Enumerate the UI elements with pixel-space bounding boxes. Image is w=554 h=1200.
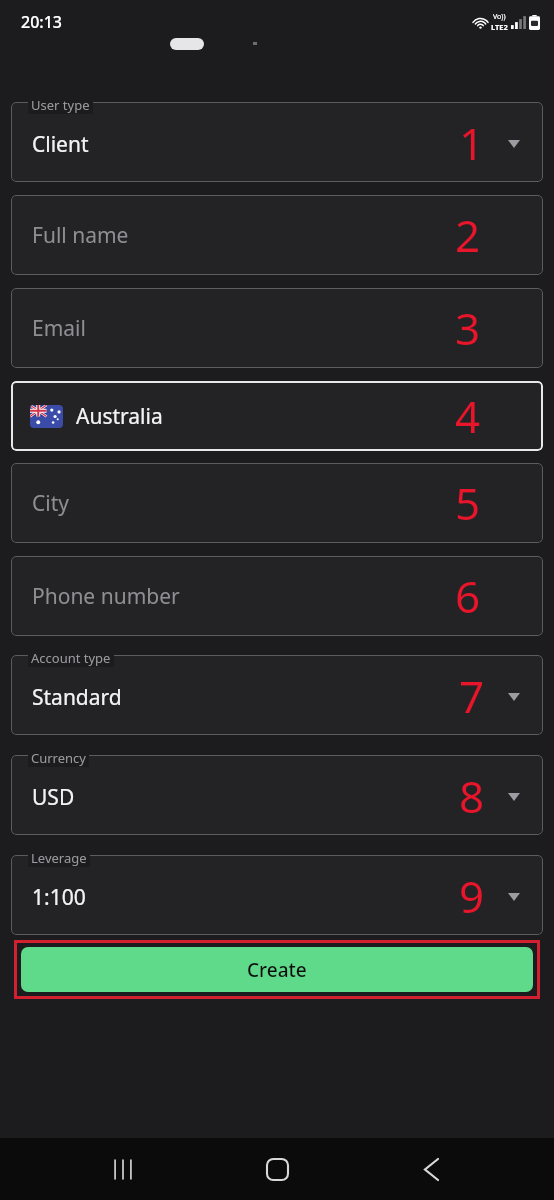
staticText: City — [32, 489, 69, 518]
staticText: 4 — [455, 386, 481, 446]
button[interactable]: Email — [11, 288, 543, 368]
staticText: Client — [32, 130, 89, 159]
button[interactable]: Currency — [11, 747, 543, 835]
staticText: 6 — [455, 566, 481, 626]
staticText: Vo)) — [493, 12, 506, 22]
button[interactable]: Leverage — [11, 847, 543, 935]
staticText: USD — [32, 783, 75, 812]
staticText: 8 — [459, 766, 485, 826]
staticText: Full name — [32, 221, 129, 250]
button[interactable]: User type — [11, 94, 543, 182]
staticText: Create — [247, 957, 307, 983]
staticText: 3 — [455, 298, 481, 358]
staticText: Standard — [32, 683, 122, 712]
button[interactable]: Create — [21, 947, 533, 992]
staticText: 2 — [455, 205, 481, 265]
staticText: 1 — [459, 113, 485, 173]
button[interactable]: Full name — [11, 195, 543, 275]
button[interactable]: Back — [400, 1138, 462, 1200]
button[interactable]: Account type — [11, 647, 543, 735]
button[interactable]: Phone number — [11, 556, 543, 636]
staticText: 5 — [455, 473, 481, 533]
staticText: User type — [31, 96, 90, 114]
staticText: 1:100 — [32, 883, 86, 912]
staticText: Email — [32, 314, 86, 343]
button[interactable]: Home — [246, 1138, 308, 1200]
button[interactable]: City — [11, 463, 543, 543]
staticText: LTE2 — [491, 22, 508, 32]
staticText: 7 — [459, 666, 485, 726]
staticText: Australia — [76, 402, 163, 431]
staticText: 20:13 — [21, 11, 62, 33]
staticText: Phone number — [32, 582, 180, 611]
staticText: 9 — [459, 866, 485, 926]
staticText: Account type — [31, 649, 111, 667]
button[interactable]: Australia — [11, 381, 543, 451]
staticText: Currency — [31, 749, 86, 767]
button[interactable]: Recent apps — [92, 1138, 154, 1200]
staticText: Leverage — [31, 849, 87, 867]
